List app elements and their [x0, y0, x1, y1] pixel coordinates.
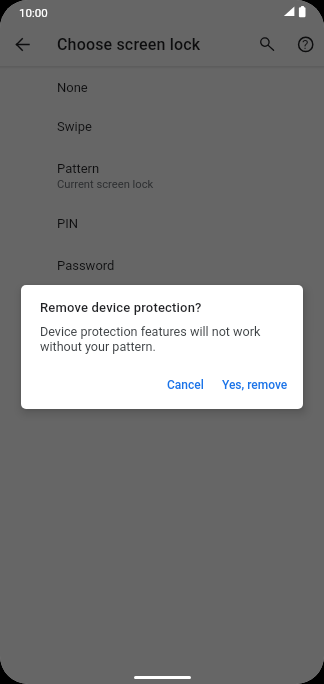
- button[interactable]: Password: [0, 245, 324, 286]
- staticText: Current screen lock: [57, 178, 154, 191]
- staticText: PIN: [57, 216, 79, 231]
- button[interactable]: Pattern: [0, 148, 324, 204]
- staticText: Device protection features will not work…: [40, 324, 284, 354]
- button[interactable]: PIN: [0, 203, 324, 244]
- button[interactable]: Yes, remove: [213, 372, 297, 398]
- button[interactable]: None: [0, 67, 324, 108]
- button[interactable]: Swipe: [0, 106, 324, 147]
- staticText: Password: [57, 258, 115, 273]
- staticText: Pattern: [57, 161, 100, 176]
- staticText: None: [57, 80, 88, 95]
- staticText: Yes, remove: [222, 378, 288, 392]
- button[interactable]: Back: [2, 24, 42, 64]
- staticText: Remove device protection?: [40, 300, 202, 315]
- staticText: ?: [302, 36, 309, 52]
- button[interactable]: Search: [245, 24, 285, 64]
- staticText: Choose screen lock: [57, 35, 201, 54]
- staticText: Swipe: [57, 119, 92, 134]
- button[interactable]: Cancel: [158, 372, 213, 398]
- button[interactable]: Help: [286, 25, 324, 64]
- staticText: 10:00: [19, 6, 48, 19]
- staticText: Cancel: [167, 378, 204, 392]
